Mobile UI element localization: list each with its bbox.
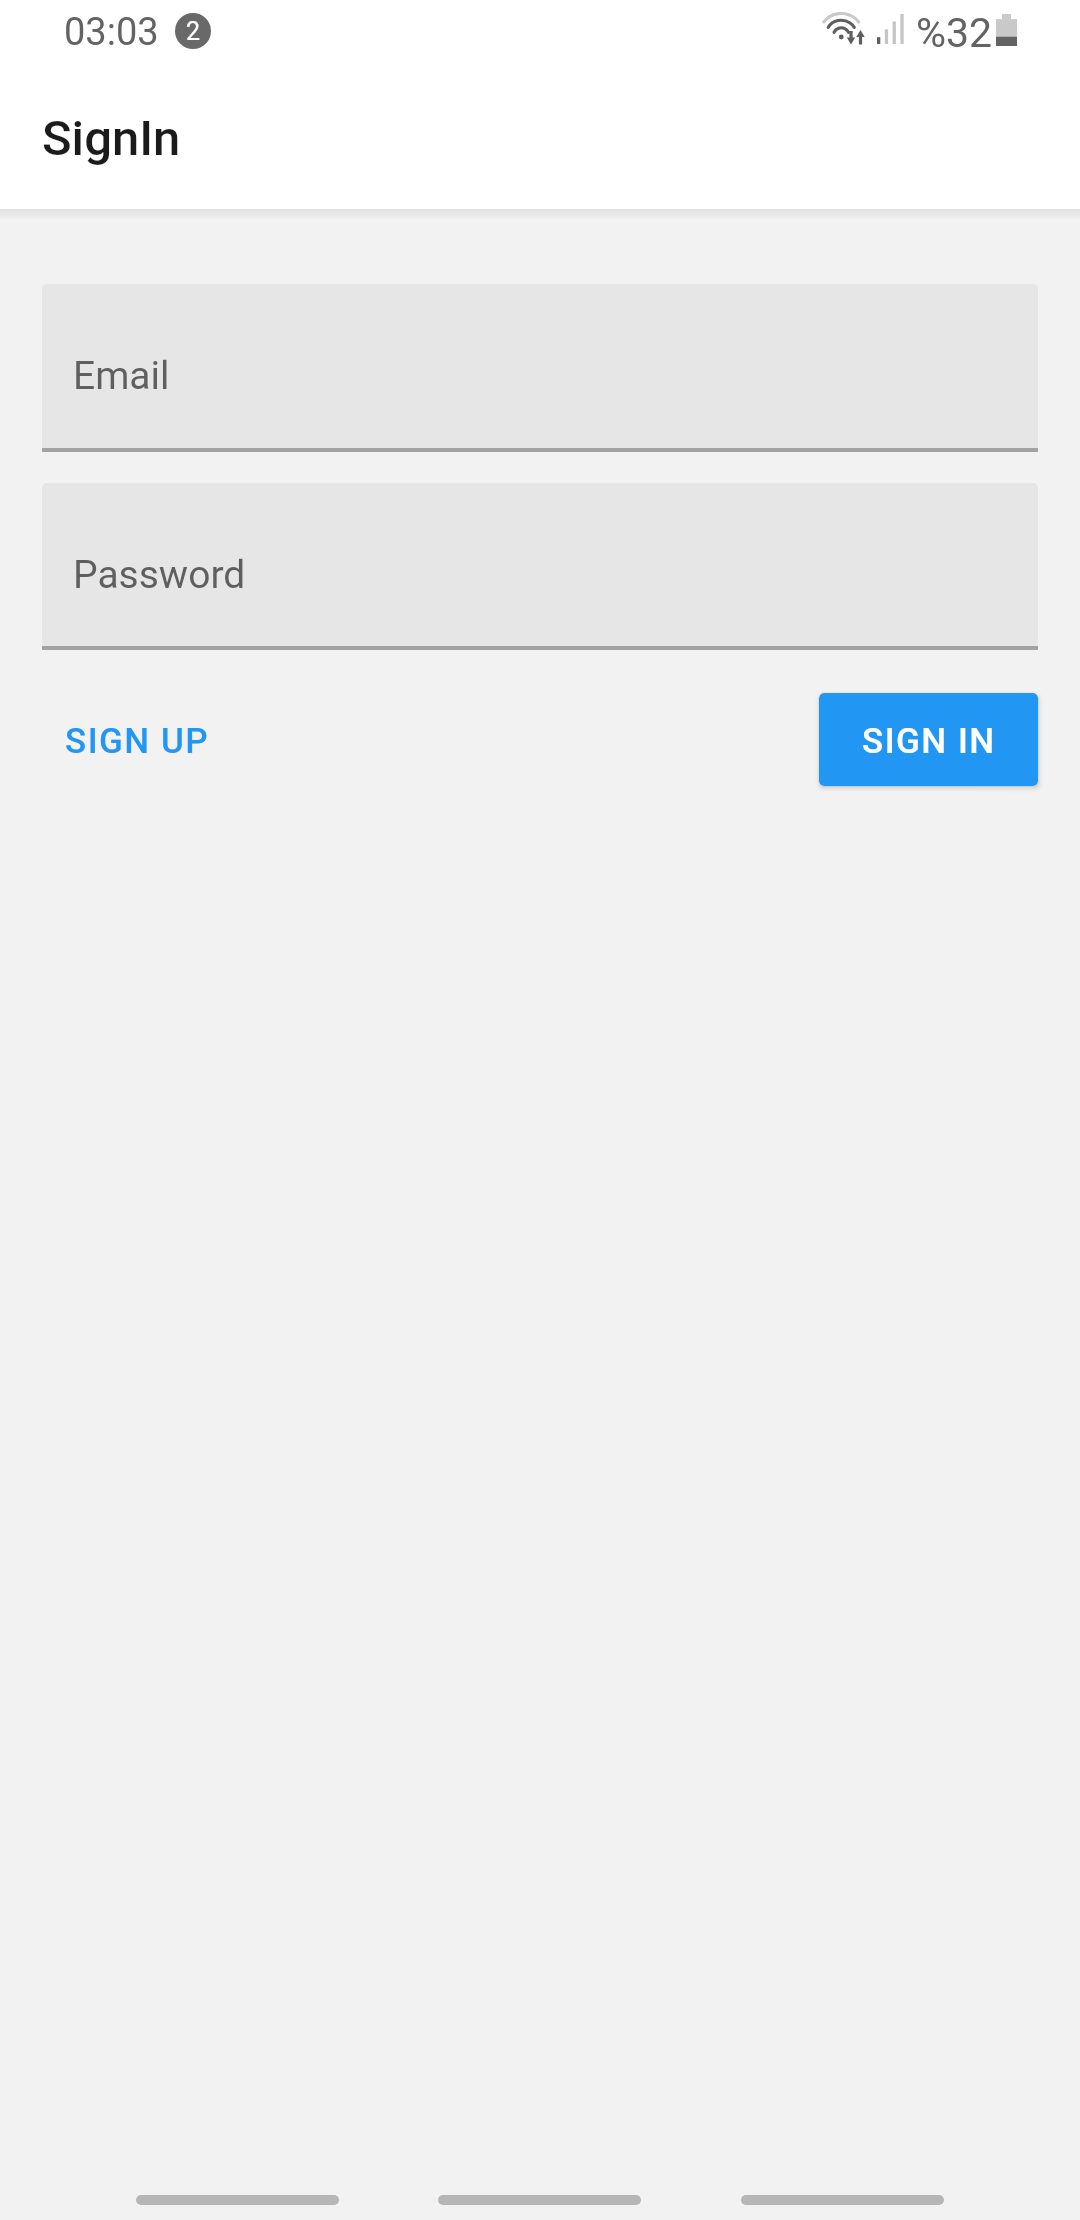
button[interactable]: Recents xyxy=(112,2167,363,2220)
staticText: Password xyxy=(73,552,246,598)
button[interactable]: Password xyxy=(42,483,1038,650)
button[interactable]: Home xyxy=(414,2167,665,2220)
staticText: SIGN IN xyxy=(862,721,996,762)
button[interactable]: SIGN UP xyxy=(23,697,252,782)
staticText: %32 xyxy=(916,9,993,57)
staticText: Email xyxy=(73,353,170,399)
staticText: SignIn xyxy=(42,110,181,167)
button[interactable]: Email xyxy=(42,284,1038,452)
staticText: SIGN UP xyxy=(65,721,210,762)
button[interactable]: SIGN IN xyxy=(819,693,1038,786)
staticText: 2 xyxy=(186,17,201,46)
staticText: 03:03 xyxy=(64,10,159,55)
button[interactable]: Back xyxy=(717,2167,968,2220)
